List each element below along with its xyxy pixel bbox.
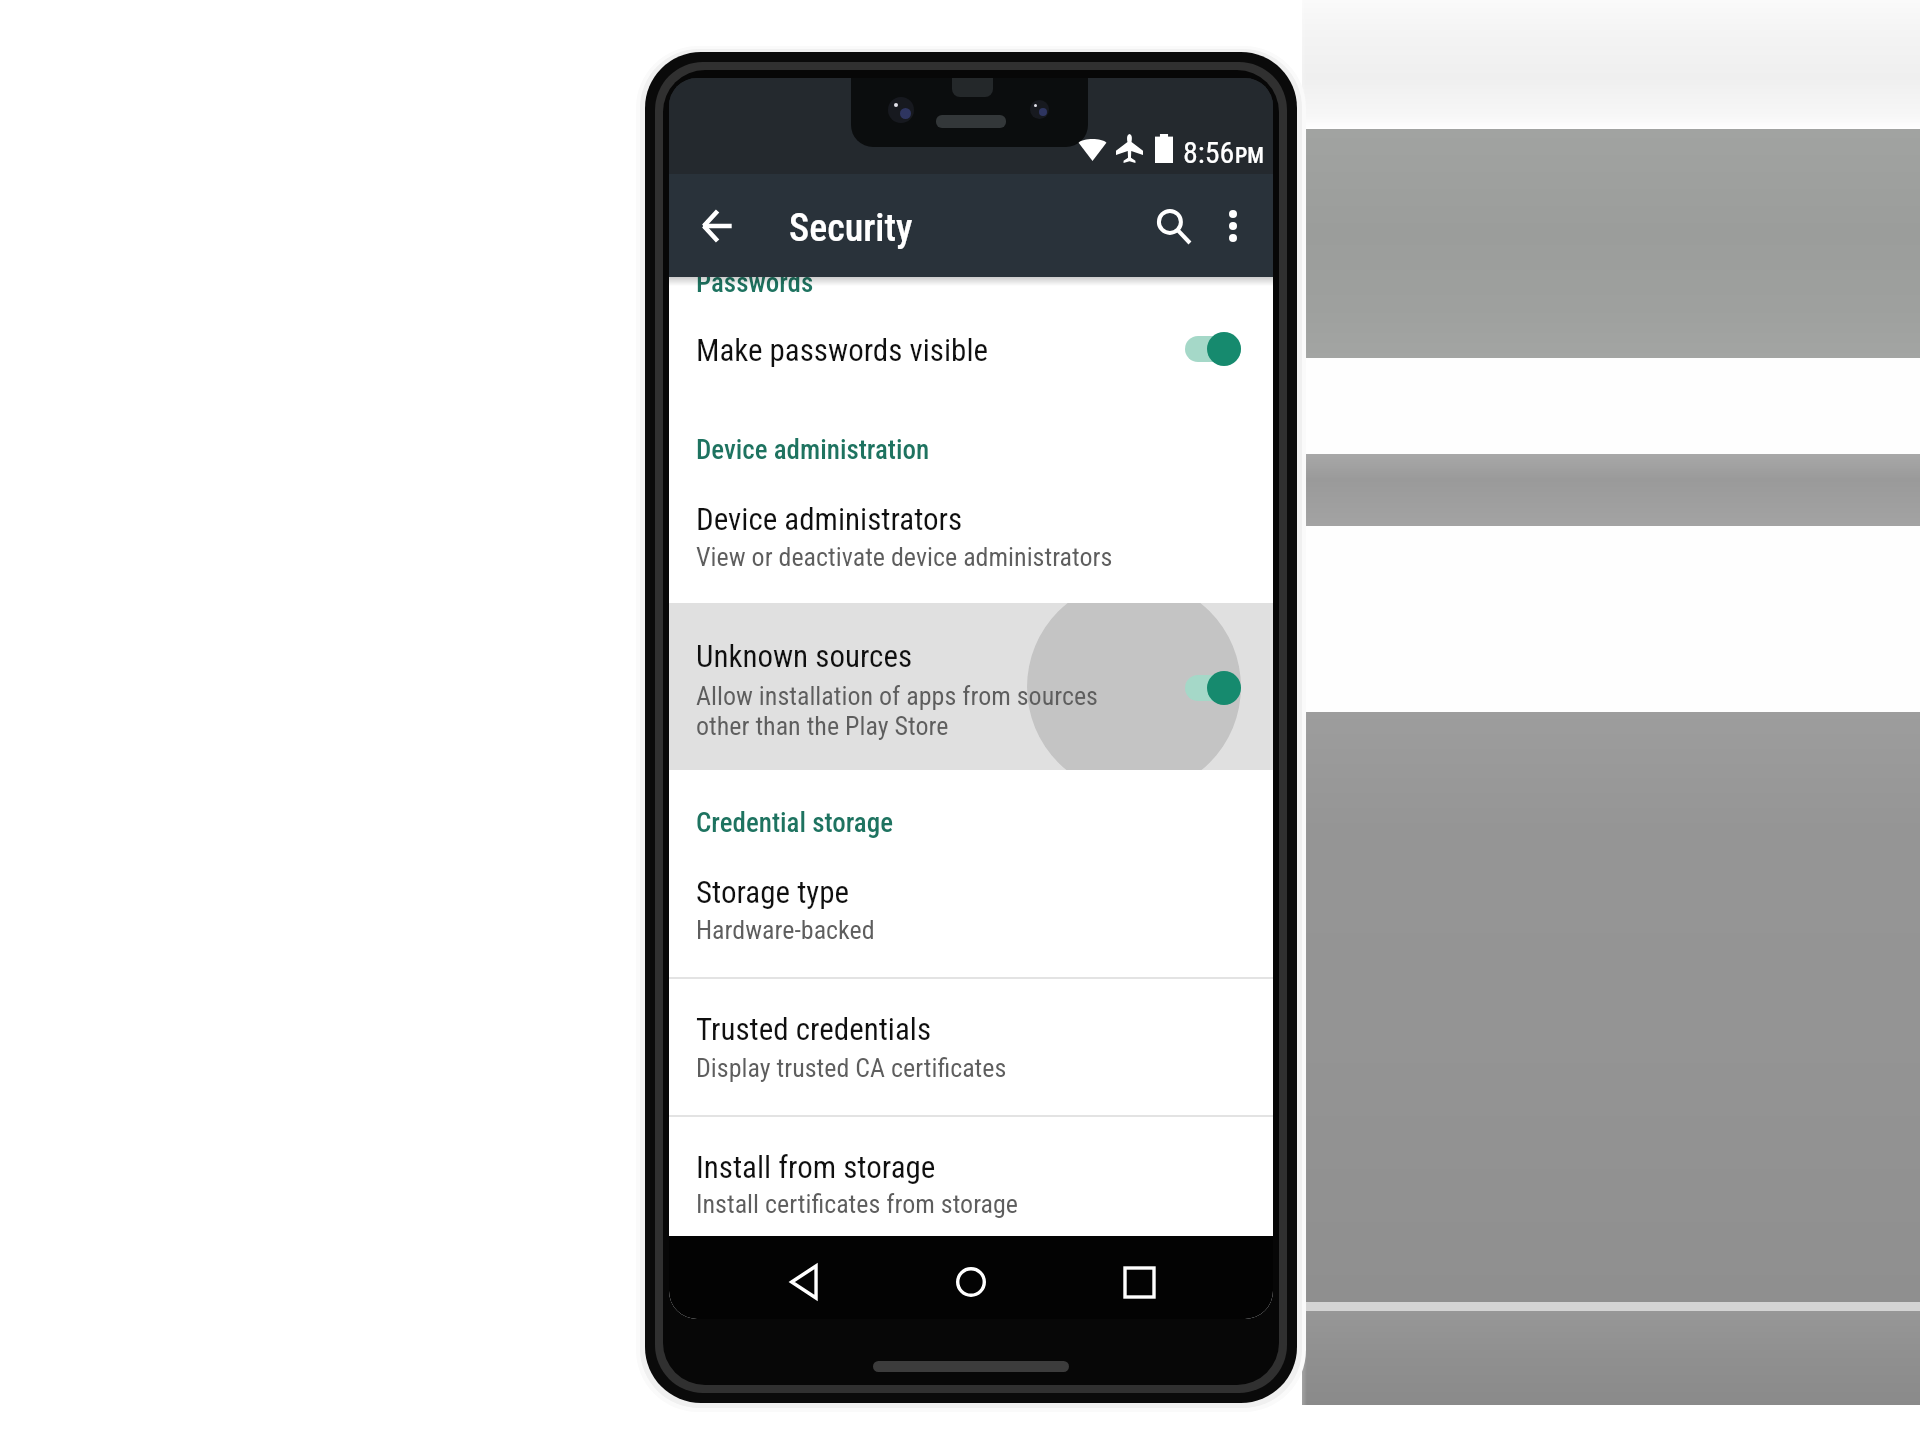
- staticText: other than the Play Store: [696, 711, 949, 741]
- button[interactable]: [669, 481, 1273, 599]
- staticText: PM: [1235, 143, 1265, 169]
- staticText: Passwords: [696, 267, 814, 299]
- staticText: Install from storage: [696, 1149, 936, 1185]
- staticText: View or deactivate device administrators: [696, 542, 1113, 572]
- staticText: Trusted credentials: [696, 1011, 932, 1047]
- staticText: Make passwords visible: [696, 332, 989, 368]
- button[interactable]: [669, 778, 1273, 938]
- button[interactable]: [669, 300, 1273, 404]
- button[interactable]: Back: [768, 1246, 840, 1318]
- staticText: Device administrators: [696, 501, 963, 537]
- staticText: Device administration: [696, 434, 930, 466]
- staticText: Display trusted CA certificates: [696, 1053, 1007, 1083]
- staticText: Credential storage: [696, 807, 893, 839]
- staticText: Security: [789, 206, 913, 251]
- button[interactable]: [669, 603, 1273, 770]
- staticText: Unknown sources: [696, 638, 913, 674]
- button[interactable]: Home: [935, 1246, 1007, 1318]
- button[interactable]: Navigate up: [681, 190, 753, 262]
- staticText: 8:56: [1183, 135, 1235, 170]
- button[interactable]: Recent apps: [1103, 1246, 1175, 1318]
- staticText: Install certificates from storage: [696, 1189, 1019, 1219]
- button[interactable]: More options: [1201, 194, 1265, 258]
- staticText: Storage type: [696, 874, 850, 910]
- button[interactable]: [669, 1116, 1273, 1236]
- button[interactable]: [669, 978, 1273, 1116]
- staticText: Allow installation of apps from sources: [696, 681, 1098, 711]
- staticText: Hardware-backed: [696, 915, 875, 945]
- button[interactable]: Search: [1139, 190, 1211, 262]
